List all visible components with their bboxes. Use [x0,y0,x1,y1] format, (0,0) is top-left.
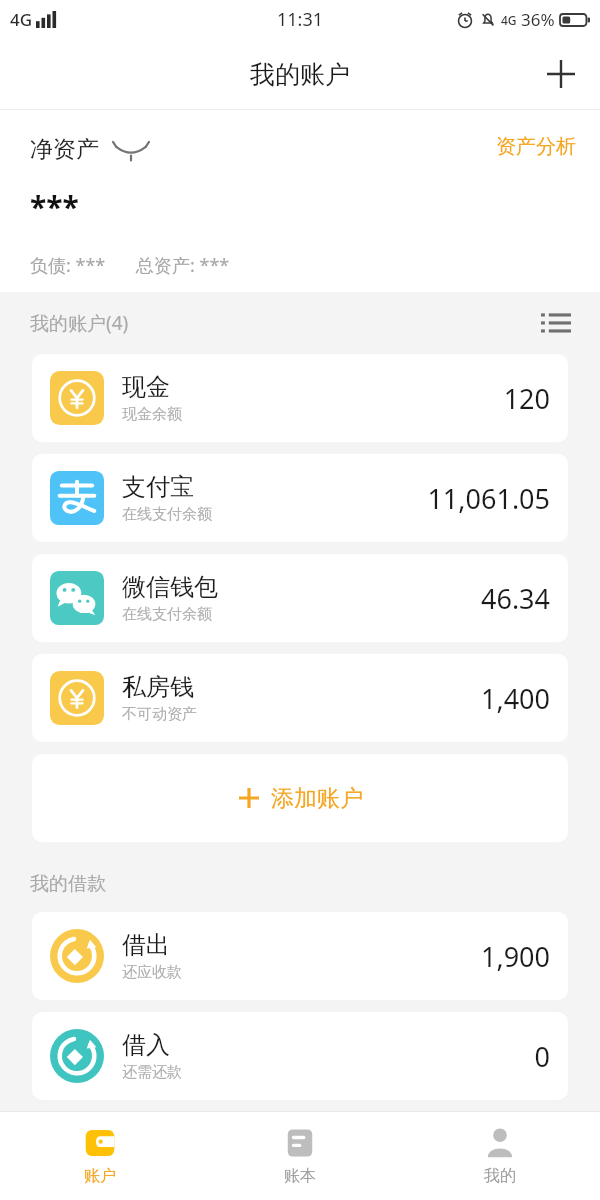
staticText: 11:31 [277,7,324,32]
button[interactable]: 私房钱 [32,654,568,742]
button[interactable]: 添加账户 [32,754,568,842]
staticText: 借入 [122,1030,170,1060]
staticText: 支付宝 [122,472,194,502]
button[interactable]: List view options [534,301,578,345]
staticText: *** [30,186,79,227]
button[interactable]: 账本 [200,1112,400,1200]
staticText: 我的账户 [250,59,350,90]
staticText: 现金余额 [122,405,182,424]
button[interactable]: 账户 [0,1112,200,1200]
staticText: 不可动资产 [122,705,197,724]
staticText: 46.34 [480,580,550,617]
staticText: 我的 [484,1166,516,1186]
staticText: 添加账户 [271,784,363,813]
staticText: 净资产 [30,135,99,164]
button[interactable]: 支付宝 [32,454,568,542]
staticText: 在线支付余额 [122,505,212,524]
staticText: 还应收款 [122,963,182,982]
staticText: 36% [521,8,555,31]
staticText: 120 [503,380,550,417]
staticText: 借出 [122,930,170,960]
staticText: 资产分析 [496,134,576,159]
staticText: 我的账户(4) [30,310,129,336]
staticText: 0 [534,1038,550,1075]
staticText: 我的借款 [30,872,106,896]
staticText: 账户 [84,1166,116,1186]
staticText: 4G [10,8,33,31]
staticText: 现金 [122,372,170,402]
button[interactable]: 微信钱包 [32,554,568,642]
button[interactable]: 我的 [400,1112,600,1200]
staticText: 1,900 [480,938,550,975]
staticText: 微信钱包 [122,572,218,602]
button[interactable]: Toggle visibility [111,134,151,164]
button[interactable]: Add account [536,49,586,99]
button[interactable]: 现金 [32,354,568,442]
button[interactable]: 借入 [32,1012,568,1100]
staticText: 私房钱 [122,672,194,702]
staticText: 负债: *** [30,253,106,278]
staticText: 总资产: *** [136,253,230,278]
staticText: 4G [501,12,517,28]
button[interactable]: 借出 [32,912,568,1000]
staticText: 11,061.05 [427,480,550,517]
staticText: 账本 [284,1166,316,1186]
button[interactable]: 资产分析 [486,128,586,165]
staticText: 1,400 [480,680,550,717]
staticText: 还需还款 [122,1063,182,1082]
staticText: 在线支付余额 [122,605,212,624]
